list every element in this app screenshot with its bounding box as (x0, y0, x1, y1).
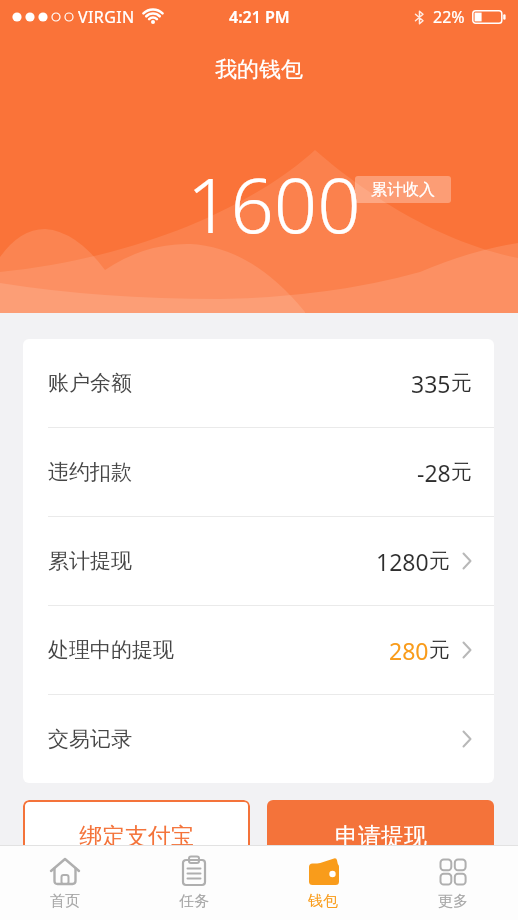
staticText: 绑定支付宝 (79, 822, 194, 851)
button[interactable]: 累计提现 (23, 517, 494, 605)
button[interactable]: 任务 (129, 846, 258, 920)
staticText: 申请提现 (335, 822, 427, 851)
staticText: 任务 (179, 892, 209, 911)
button[interactable]: 绑定支付宝 (23, 800, 250, 872)
button[interactable]: 钱包 (258, 846, 388, 920)
button[interactable]: 申请提现 (267, 800, 494, 872)
staticText: VIRGIN (78, 6, 135, 28)
button[interactable]: 账户余额 (23, 339, 494, 427)
staticText: 元 (451, 459, 472, 485)
staticText: 账户余额 (48, 370, 132, 396)
staticText: 交易记录 (48, 726, 132, 752)
staticText: 首页 (50, 892, 80, 911)
staticText: 累计提现 (48, 548, 132, 574)
staticText: 22% (433, 6, 465, 28)
staticText: -28 (417, 457, 451, 488)
staticText: 累计收入 (371, 180, 435, 200)
staticText: 280 (389, 635, 429, 666)
staticText: 钱包 (308, 892, 338, 911)
button[interactable]: 首页 (0, 846, 129, 920)
button[interactable]: 违约扣款 (23, 428, 494, 516)
button[interactable]: 更多 (388, 846, 518, 920)
staticText: 1280 (376, 546, 429, 577)
staticText: 元 (429, 637, 450, 663)
staticText: 335 (411, 368, 451, 399)
staticText: 更多 (438, 892, 468, 911)
button[interactable]: 处理中的提现 (23, 606, 494, 694)
staticText: 1600 (187, 152, 361, 256)
staticText: 违约扣款 (48, 459, 132, 485)
staticText: 我的钱包 (215, 56, 303, 84)
staticText: 元 (451, 370, 472, 396)
staticText: 4:21 PM (229, 6, 290, 28)
staticText: 处理中的提现 (48, 637, 174, 663)
staticText: 元 (429, 548, 450, 574)
button[interactable]: 交易记录 (23, 695, 494, 783)
